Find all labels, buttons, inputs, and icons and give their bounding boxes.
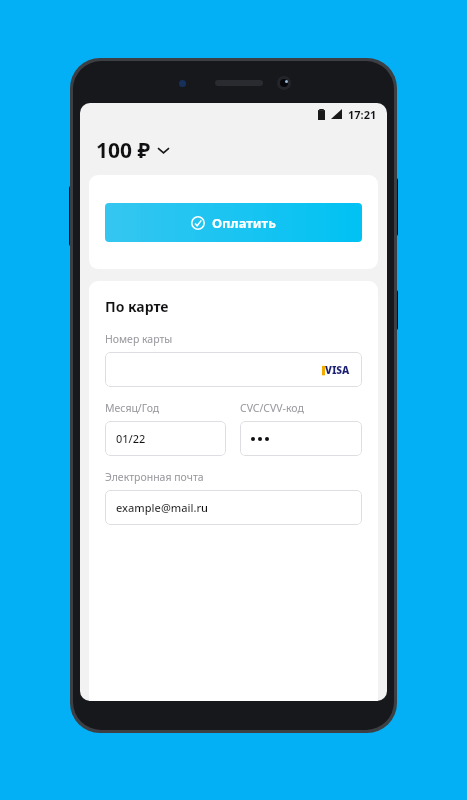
staticText: VISA — [325, 363, 350, 377]
button[interactable]: example@mail.ru — [105, 490, 362, 525]
button[interactable]: Оплатить — [105, 203, 362, 242]
staticText: По карте — [105, 297, 169, 316]
staticText: CVC/CVV-код — [240, 401, 304, 415]
staticText: Месяц/Год — [105, 401, 160, 415]
staticText: Электронная почта — [105, 470, 204, 484]
staticText: Номер карты — [105, 332, 173, 346]
button[interactable]: 100 ₽ — [80, 125, 387, 175]
button[interactable]: 01/22 — [105, 421, 226, 456]
staticText: example@mail.ru — [116, 500, 208, 515]
button[interactable] — [240, 421, 362, 456]
staticText: 01/22 — [116, 431, 146, 446]
button[interactable]: VISA — [105, 352, 362, 387]
staticText: 17:21 — [348, 107, 377, 122]
staticText: Оплатить — [212, 214, 276, 232]
staticText: 100 ₽ — [96, 136, 151, 165]
